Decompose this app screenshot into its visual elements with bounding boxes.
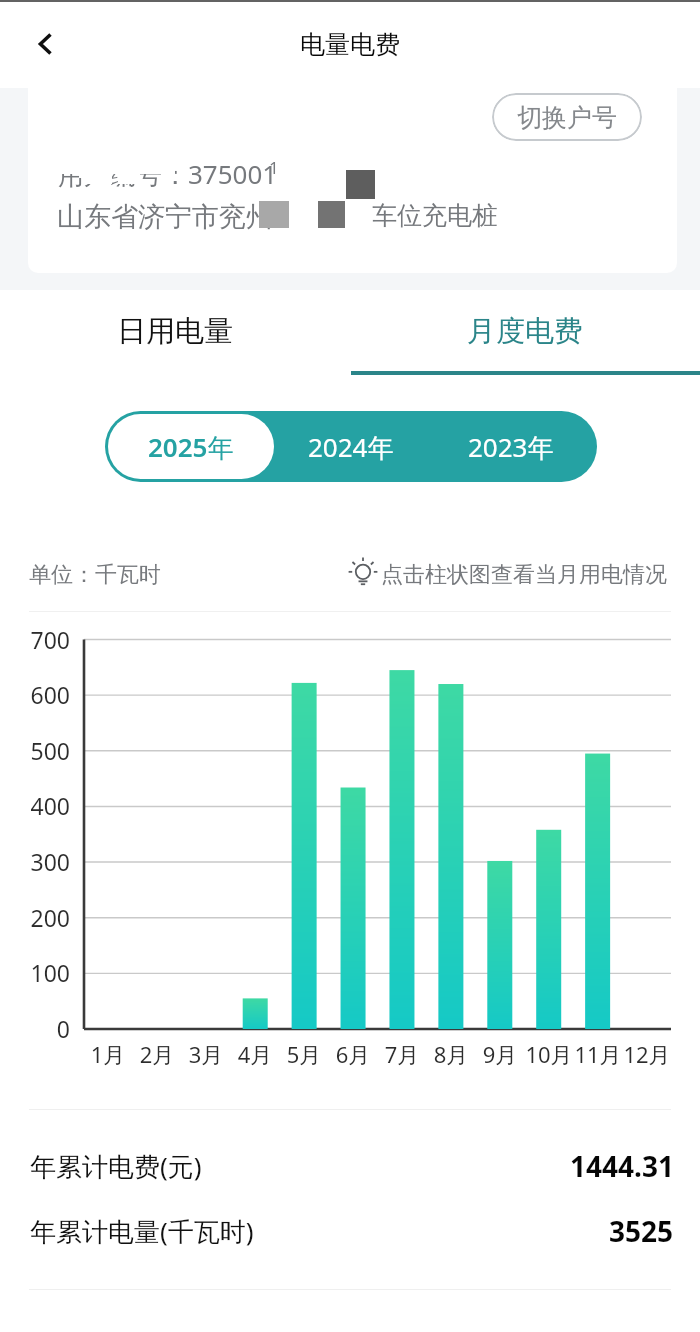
staticText: 车位充电桩 <box>372 200 497 231</box>
staticText: 2025年 <box>148 429 234 465</box>
button[interactable]: 2024年 <box>270 411 432 482</box>
staticText: 年累计电费(元) <box>30 1148 202 1184</box>
staticText: 400 <box>0 790 70 821</box>
button[interactable]: 切换户号 <box>492 93 642 141</box>
staticText: 1 <box>269 156 279 179</box>
staticText: 3月 <box>166 1039 246 1069</box>
staticText: 2023年 <box>468 429 554 465</box>
staticText: 4月 <box>215 1039 295 1069</box>
staticText: 500 <box>0 735 70 766</box>
staticText: 700 <box>0 624 70 655</box>
staticText: 100 <box>0 957 70 988</box>
staticText: 200 <box>0 902 70 933</box>
staticText: 年累计电量(千瓦时) <box>30 1213 254 1249</box>
button[interactable]: 月度电费 <box>350 291 700 371</box>
staticText: 11月 <box>558 1039 638 1069</box>
staticText: 5月 <box>264 1039 344 1069</box>
staticText: 300 <box>0 846 70 877</box>
staticText: 0 <box>0 1013 70 1044</box>
staticText: 12月 <box>607 1039 687 1069</box>
staticText: 用户编号：375001 <box>58 156 278 192</box>
staticText: 1月 <box>68 1039 148 1069</box>
staticText: 7月 <box>362 1039 442 1069</box>
staticText: 点击柱状图查看当月用电情况 <box>381 561 667 589</box>
staticText: 切换户号 <box>517 102 617 133</box>
staticText: 3525 <box>609 1212 674 1250</box>
staticText: 6月 <box>313 1039 393 1069</box>
staticText: 8月 <box>411 1039 491 1069</box>
staticText: 月度电费 <box>467 313 583 350</box>
staticText: 1444.31 <box>570 1147 674 1185</box>
button[interactable]: 年累计电费(元) <box>30 1134 674 1198</box>
staticText: 600 <box>0 679 70 710</box>
staticText: 山东省济宁市兖州 <box>57 200 273 234</box>
staticText: 日用电量 <box>117 313 233 350</box>
staticText: 9月 <box>460 1039 540 1069</box>
staticText: 单位：千瓦时 <box>29 561 161 589</box>
staticText: 电量电费 <box>300 29 400 60</box>
staticText: 10月 <box>509 1039 589 1069</box>
button[interactable]: 日用电量 <box>0 291 350 371</box>
staticText: 2月 <box>117 1039 197 1069</box>
button[interactable]: 年累计电量(千瓦时) <box>30 1199 674 1263</box>
button[interactable]: 2025年 <box>108 414 274 479</box>
staticText: 2024年 <box>308 429 394 465</box>
button[interactable]: 2023年 <box>430 411 591 482</box>
button[interactable]: Back <box>22 20 70 68</box>
